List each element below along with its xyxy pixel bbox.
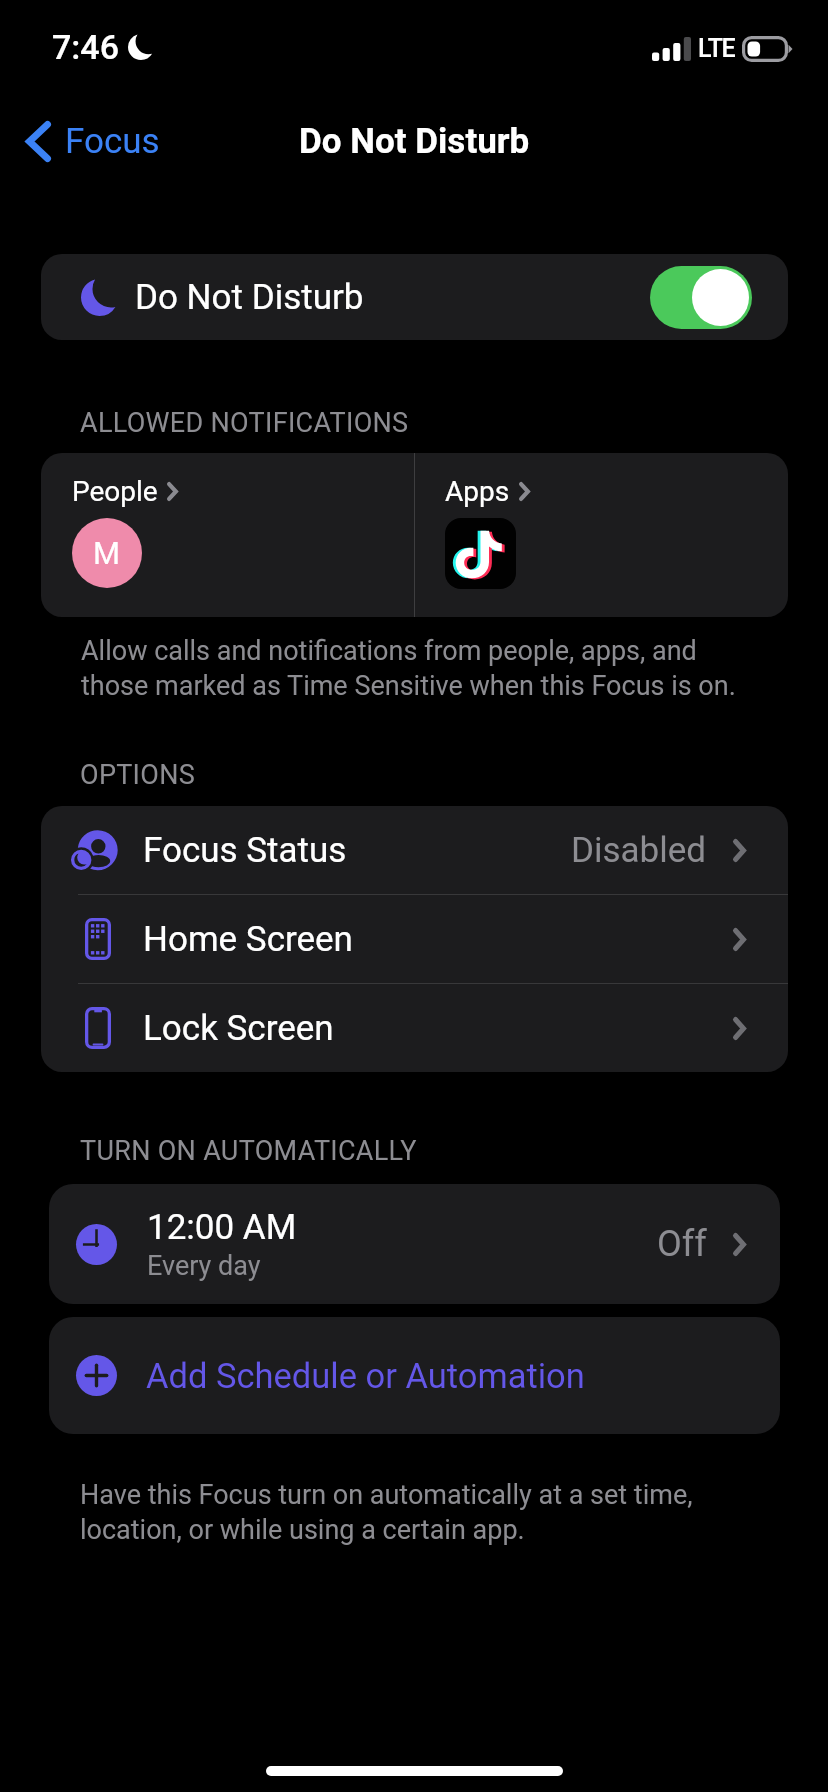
staticText: OPTIONS bbox=[80, 759, 196, 791]
staticText: Lock Screen bbox=[143, 1008, 334, 1049]
staticText: 7:46 bbox=[52, 27, 119, 67]
staticText: Have this Focus turn on automatically at… bbox=[80, 1479, 740, 1545]
staticText: 12:00 AM bbox=[147, 1207, 297, 1248]
staticText: Do Not Disturb bbox=[299, 121, 530, 162]
staticText: Focus bbox=[65, 121, 160, 162]
staticText: TURN ON AUTOMATICALLY bbox=[80, 1135, 417, 1167]
staticText: Home Screen bbox=[143, 919, 353, 960]
staticText: ALLOWED NOTIFICATIONS bbox=[80, 407, 409, 439]
button[interactable]: Do Not Disturb toggle bbox=[650, 266, 752, 329]
button[interactable]: Lock Screen bbox=[41, 984, 788, 1072]
button[interactable]: 12:00 AM bbox=[49, 1184, 780, 1304]
button[interactable]: Home Screen bbox=[41, 895, 788, 983]
staticText: Every day bbox=[147, 1250, 261, 1282]
staticText: Off bbox=[657, 1223, 707, 1265]
staticText: M bbox=[93, 535, 121, 571]
button[interactable]: Focus Status bbox=[41, 806, 788, 894]
staticText: Do Not Disturb bbox=[135, 277, 364, 318]
button[interactable]: Add Schedule or Automation bbox=[49, 1317, 780, 1434]
staticText: Apps bbox=[445, 475, 510, 508]
button[interactable]: Apps bbox=[415, 453, 788, 617]
button[interactable]: People bbox=[41, 453, 414, 617]
staticText: People bbox=[72, 475, 158, 508]
staticText: Focus Status bbox=[143, 830, 347, 871]
staticText: Allow calls and notifications from peopl… bbox=[81, 635, 753, 701]
button[interactable]: Do Not Disturb bbox=[41, 254, 788, 340]
button[interactable]: Focus bbox=[22, 113, 166, 170]
staticText: Add Schedule or Automation bbox=[146, 1356, 585, 1396]
staticText: LTE bbox=[698, 34, 735, 63]
staticText: Disabled bbox=[571, 830, 707, 871]
